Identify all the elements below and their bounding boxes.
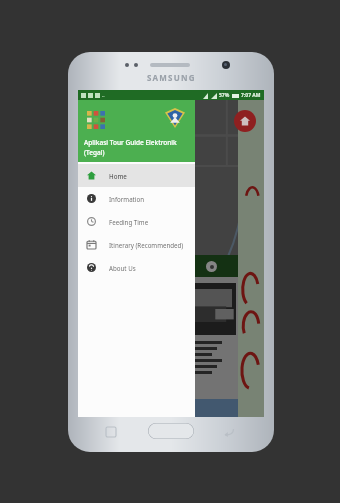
staticText: Itinerary (Recommended) <box>109 241 184 249</box>
staticText: SAMSUNG <box>147 72 196 83</box>
button[interactable]: Back <box>224 427 234 437</box>
button[interactable]: Itinerary (Recommended) <box>78 233 195 256</box>
button[interactable]: Home button <box>148 423 194 439</box>
button[interactable]: Home <box>78 164 195 187</box>
staticText: Aplikasi Tour Guide Elektronik <box>84 138 177 147</box>
staticText: Feeding Time <box>109 218 149 226</box>
button[interactable]: About Us <box>78 256 195 279</box>
staticText: Home <box>109 172 127 180</box>
staticText: (Tegal) <box>84 148 105 157</box>
staticText: 7:07 AM <box>241 92 261 99</box>
staticText: Information <box>109 195 145 203</box>
staticText: About Us <box>109 264 136 272</box>
button[interactable]: Home location <box>234 110 256 132</box>
staticText: 57% <box>219 92 230 99</box>
button[interactable]: Feeding Time <box>78 210 195 233</box>
staticText: .. <box>102 92 105 99</box>
button[interactable]: Information <box>78 187 195 210</box>
button[interactable]: Recent apps <box>106 427 116 437</box>
